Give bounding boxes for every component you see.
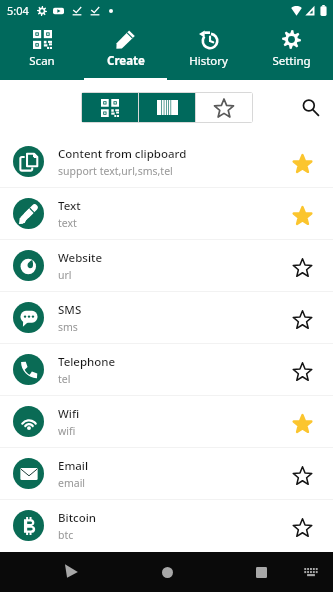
- staticText: Telephone: [58, 354, 116, 370]
- staticText: Text: [58, 198, 81, 214]
- button[interactable]: QR code: [82, 93, 138, 122]
- button[interactable]: Scan: [0, 21, 84, 80]
- staticText: 5:04: [7, 3, 29, 18]
- staticText: tel: [58, 372, 71, 386]
- button[interactable]: Content from clipboard: [0, 136, 333, 187]
- staticText: sms: [58, 320, 78, 334]
- button[interactable]: Favorites: [196, 93, 252, 122]
- button[interactable]: Telephone: [0, 344, 333, 395]
- button[interactable]: History: [167, 21, 250, 80]
- button[interactable]: Recents: [244, 555, 278, 589]
- staticText: Content from clipboard: [58, 146, 187, 162]
- button[interactable]: Create: [84, 21, 167, 80]
- button[interactable]: Wifi: [0, 396, 333, 447]
- button[interactable]: Keyboard: [297, 558, 325, 586]
- staticText: Wifi: [58, 406, 80, 422]
- staticText: email: [58, 476, 86, 490]
- button[interactable]: Home: [150, 555, 184, 589]
- staticText: wifi: [58, 424, 76, 438]
- button[interactable]: Favorite: [287, 304, 317, 334]
- staticText: Scan: [29, 53, 55, 69]
- staticText: Website: [58, 250, 103, 266]
- button[interactable]: Setting: [250, 21, 333, 80]
- staticText: Setting: [272, 53, 311, 69]
- staticText: url: [58, 268, 72, 282]
- button[interactable]: Bitcoin: [0, 500, 333, 551]
- staticText: text: [58, 216, 77, 230]
- button[interactable]: Favorite: [287, 356, 317, 386]
- button[interactable]: Back: [54, 554, 88, 588]
- staticText: History: [189, 53, 228, 69]
- button[interactable]: Favorite: [287, 460, 317, 490]
- staticText: Bitcoin: [58, 510, 97, 526]
- button[interactable]: Favorite: [287, 252, 317, 282]
- button[interactable]: Favorite: [287, 148, 317, 178]
- button[interactable]: SMS: [0, 292, 333, 343]
- staticText: support text,url,sms,tel: [58, 164, 173, 178]
- button[interactable]: Favorite: [287, 200, 317, 230]
- button[interactable]: Favorite: [287, 512, 317, 542]
- button[interactable]: Website: [0, 240, 333, 291]
- button[interactable]: Barcode: [139, 93, 195, 122]
- button[interactable]: Email: [0, 448, 333, 499]
- button[interactable]: Text: [0, 188, 333, 239]
- button[interactable]: Search: [297, 94, 325, 122]
- staticText: Create: [107, 53, 145, 69]
- staticText: SMS: [58, 302, 82, 318]
- staticText: Email: [58, 458, 89, 474]
- staticText: btc: [58, 528, 74, 542]
- button[interactable]: Favorite: [287, 408, 317, 438]
